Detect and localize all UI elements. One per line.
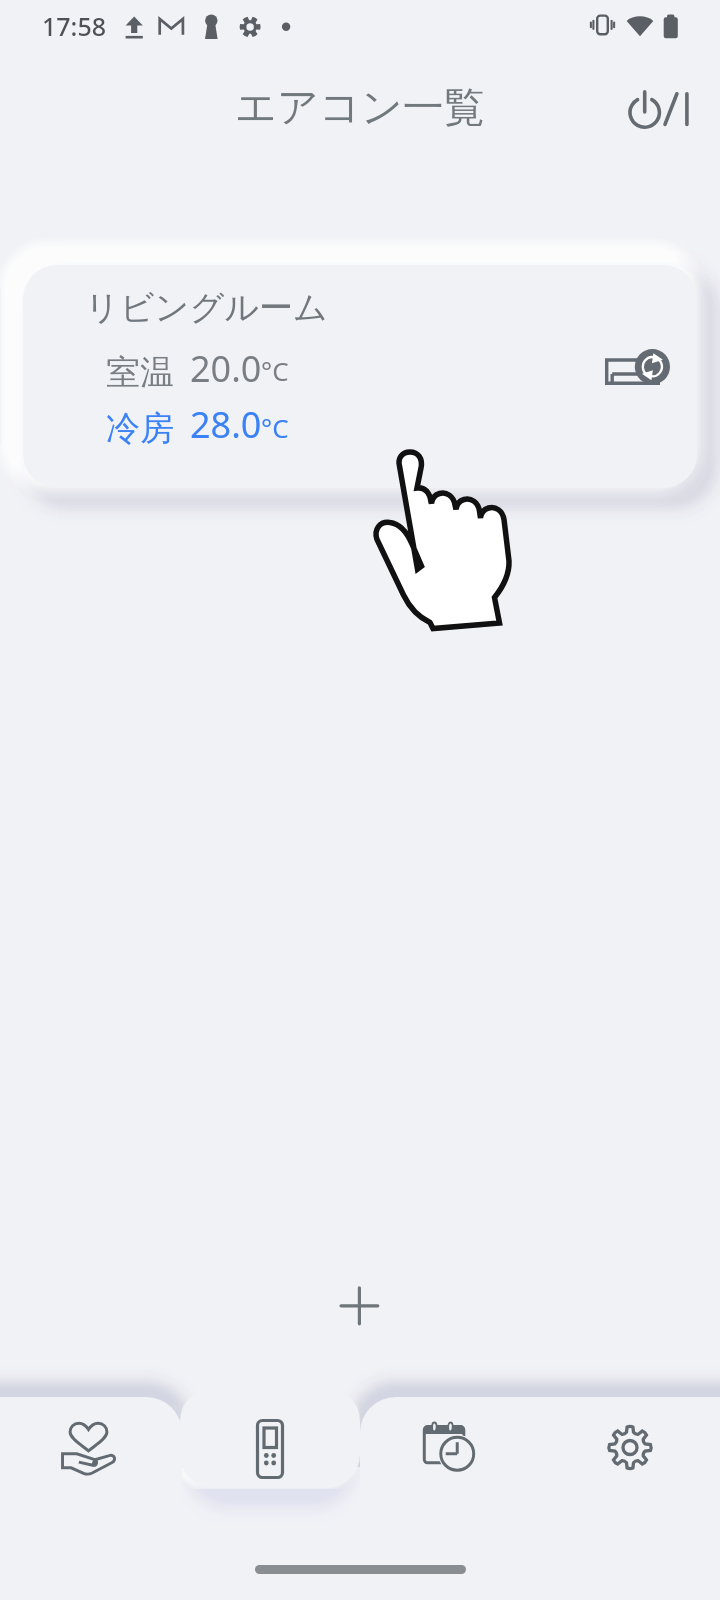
staticText: 28.0 (190, 400, 262, 449)
button[interactable]: Power on off toggle (614, 80, 702, 142)
staticText: °C (261, 353, 289, 388)
staticText: 20.0 (190, 344, 262, 393)
staticText: リビングルーム (85, 286, 328, 329)
staticText: 室温 (106, 351, 174, 394)
button[interactable]: リビングルーム (23, 265, 697, 488)
button[interactable]: Settings (570, 1400, 690, 1496)
button[interactable]: Remote (210, 1400, 330, 1496)
staticText: °C (261, 410, 289, 445)
button[interactable]: Schedule (390, 1400, 510, 1496)
button[interactable]: Add air conditioner (300, 1258, 420, 1354)
staticText: 冷房 (106, 407, 174, 450)
button[interactable]: Favorites (30, 1400, 150, 1496)
staticText: 17:58 (42, 9, 107, 43)
staticText: エアコン一覧 (235, 82, 485, 134)
